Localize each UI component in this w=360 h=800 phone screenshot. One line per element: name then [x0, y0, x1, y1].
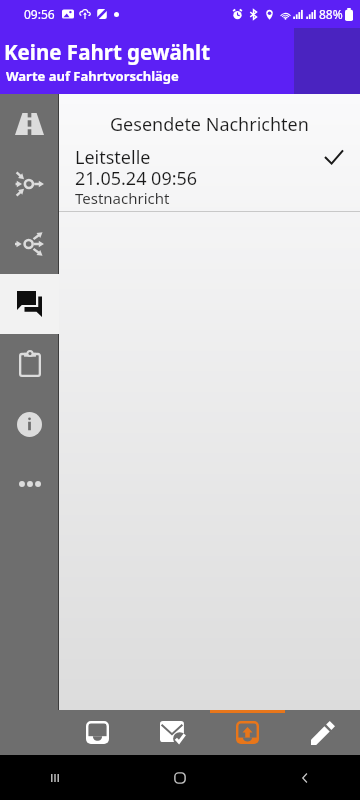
button[interactable]: Messages — [0, 274, 59, 334]
button[interactable]: Leitstelle — [59, 145, 360, 215]
button[interactable]: Split — [0, 214, 59, 274]
button[interactable]: Recent apps — [40, 763, 70, 793]
staticText: 21.05.24 09:56 — [75, 166, 198, 191]
button[interactable]: Outbox — [210, 710, 285, 755]
button[interactable]: New message — [285, 710, 360, 755]
button[interactable]: Home — [165, 763, 195, 793]
staticText: 88% — [319, 6, 343, 22]
button[interactable]: More options — [0, 454, 59, 514]
button[interactable]: Tasks — [0, 334, 59, 394]
staticText: 09:56 — [24, 6, 55, 22]
staticText: Warte auf Fahrtvorschläge — [6, 67, 179, 85]
button[interactable]: Inbox — [59, 710, 135, 755]
staticText: Testnachricht — [75, 188, 170, 208]
button[interactable]: Sent messages — [135, 710, 210, 755]
staticText: Gesendete Nachrichten — [110, 112, 309, 137]
button[interactable]: Back — [290, 763, 320, 793]
staticText: Leitstelle — [75, 145, 151, 170]
button[interactable]: Info — [0, 394, 59, 454]
button[interactable]: Routes — [0, 94, 59, 154]
button[interactable]: Merge — [0, 154, 59, 214]
staticText: Keine Fahrt gewählt — [4, 38, 211, 66]
